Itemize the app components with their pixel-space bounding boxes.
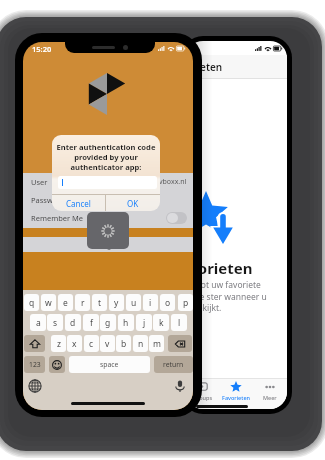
button[interactable]: y xyxy=(109,294,124,311)
staticText: c xyxy=(89,338,94,350)
button[interactable]: Cancel xyxy=(52,195,105,211)
button[interactable]: e xyxy=(58,294,73,311)
staticText: w xyxy=(45,297,52,309)
staticText: r xyxy=(81,297,85,309)
button[interactable]: Shift xyxy=(24,335,45,352)
staticText: Meer xyxy=(263,394,277,401)
button[interactable]: h xyxy=(118,314,134,331)
staticText: a xyxy=(36,317,41,329)
button[interactable]: Dictate xyxy=(173,379,187,393)
button[interactable]: Authentication code field xyxy=(58,176,157,189)
button[interactable]: Backspace xyxy=(168,335,192,352)
staticText: return xyxy=(163,360,184,369)
button[interactable]: b xyxy=(116,335,131,352)
button[interactable]: Emoji xyxy=(49,356,65,373)
staticText: o xyxy=(165,297,171,309)
staticText: h xyxy=(123,317,129,329)
button[interactable]: space xyxy=(69,356,150,373)
button[interactable]: z xyxy=(51,335,66,352)
button[interactable]: Remember Me toggle xyxy=(166,212,187,224)
staticText: Favorieten xyxy=(222,394,250,401)
staticText: Remember Me xyxy=(31,213,84,223)
staticText: Favorieten xyxy=(186,60,223,74)
staticText: q xyxy=(29,297,35,309)
staticText: Passwo xyxy=(31,195,58,205)
button[interactable]: p xyxy=(178,294,193,311)
button[interactable]: m xyxy=(149,335,164,352)
button[interactable]: d xyxy=(65,314,81,331)
staticText: n xyxy=(138,338,144,350)
button[interactable]: return xyxy=(154,356,193,373)
staticText: x xyxy=(72,338,77,350)
staticText: k xyxy=(159,317,164,329)
staticText: vboxx.nl xyxy=(159,177,187,187)
staticText: 123 xyxy=(29,360,41,369)
staticText: Cancel xyxy=(66,198,91,209)
button[interactable]: k xyxy=(153,314,169,331)
button[interactable]: n xyxy=(133,335,148,352)
staticText: t xyxy=(98,297,102,309)
button[interactable]: o xyxy=(160,294,175,311)
button[interactable]: Meer xyxy=(253,379,287,402)
button[interactable]: c xyxy=(84,335,99,352)
button[interactable]: w xyxy=(41,294,56,311)
staticText: User xyxy=(31,177,48,187)
button[interactable]: t xyxy=(92,294,107,311)
staticText: Groups xyxy=(193,394,213,401)
button[interactable]: Favorieten xyxy=(219,379,253,402)
button[interactable]: Groups xyxy=(186,379,219,402)
button[interactable]: f xyxy=(83,314,99,331)
button[interactable]: x xyxy=(67,335,82,352)
button[interactable]: r xyxy=(75,294,90,311)
button[interactable]: OK xyxy=(106,195,160,211)
staticText: e xyxy=(63,297,68,309)
button[interactable]: l xyxy=(171,314,187,331)
button[interactable]: Change keyboard xyxy=(28,379,42,393)
staticText: OK xyxy=(127,198,139,209)
staticText: g xyxy=(105,317,111,329)
staticText: p xyxy=(183,297,189,309)
button[interactable]: Login xyxy=(69,239,147,253)
staticText: u xyxy=(131,297,137,309)
staticText: j xyxy=(143,317,146,329)
button[interactable]: v xyxy=(100,335,115,352)
staticText: s xyxy=(53,317,58,329)
button[interactable]: u xyxy=(126,294,141,311)
button[interactable]: Remember Me xyxy=(23,209,193,227)
staticText: l xyxy=(178,317,181,329)
staticText: v xyxy=(105,338,110,350)
staticText: Favorieten xyxy=(186,258,253,278)
staticText: d xyxy=(70,317,76,329)
button[interactable]: q xyxy=(24,294,39,311)
button[interactable]: g xyxy=(100,314,116,331)
staticText: b xyxy=(121,338,127,350)
staticText: i xyxy=(149,297,152,309)
staticText: y xyxy=(114,297,119,309)
button[interactable]: j xyxy=(136,314,152,331)
button[interactable]: s xyxy=(47,314,63,331)
staticText: Enter authentication code provided by yo… xyxy=(52,142,160,172)
staticText: space xyxy=(100,360,119,369)
button[interactable]: 123 xyxy=(24,356,45,373)
staticText: m xyxy=(153,338,161,350)
staticText: f xyxy=(90,317,93,329)
staticText: 15:20 xyxy=(32,44,52,54)
button[interactable]: i xyxy=(143,294,158,311)
button[interactable]: a xyxy=(30,314,46,331)
staticText: ngen tot uw favoriete k op de ster wanne… xyxy=(186,279,267,313)
staticText: z xyxy=(57,338,61,350)
staticText: Login xyxy=(99,241,118,251)
button[interactable]: User xyxy=(23,173,193,191)
button[interactable]: Passwo xyxy=(23,191,193,209)
